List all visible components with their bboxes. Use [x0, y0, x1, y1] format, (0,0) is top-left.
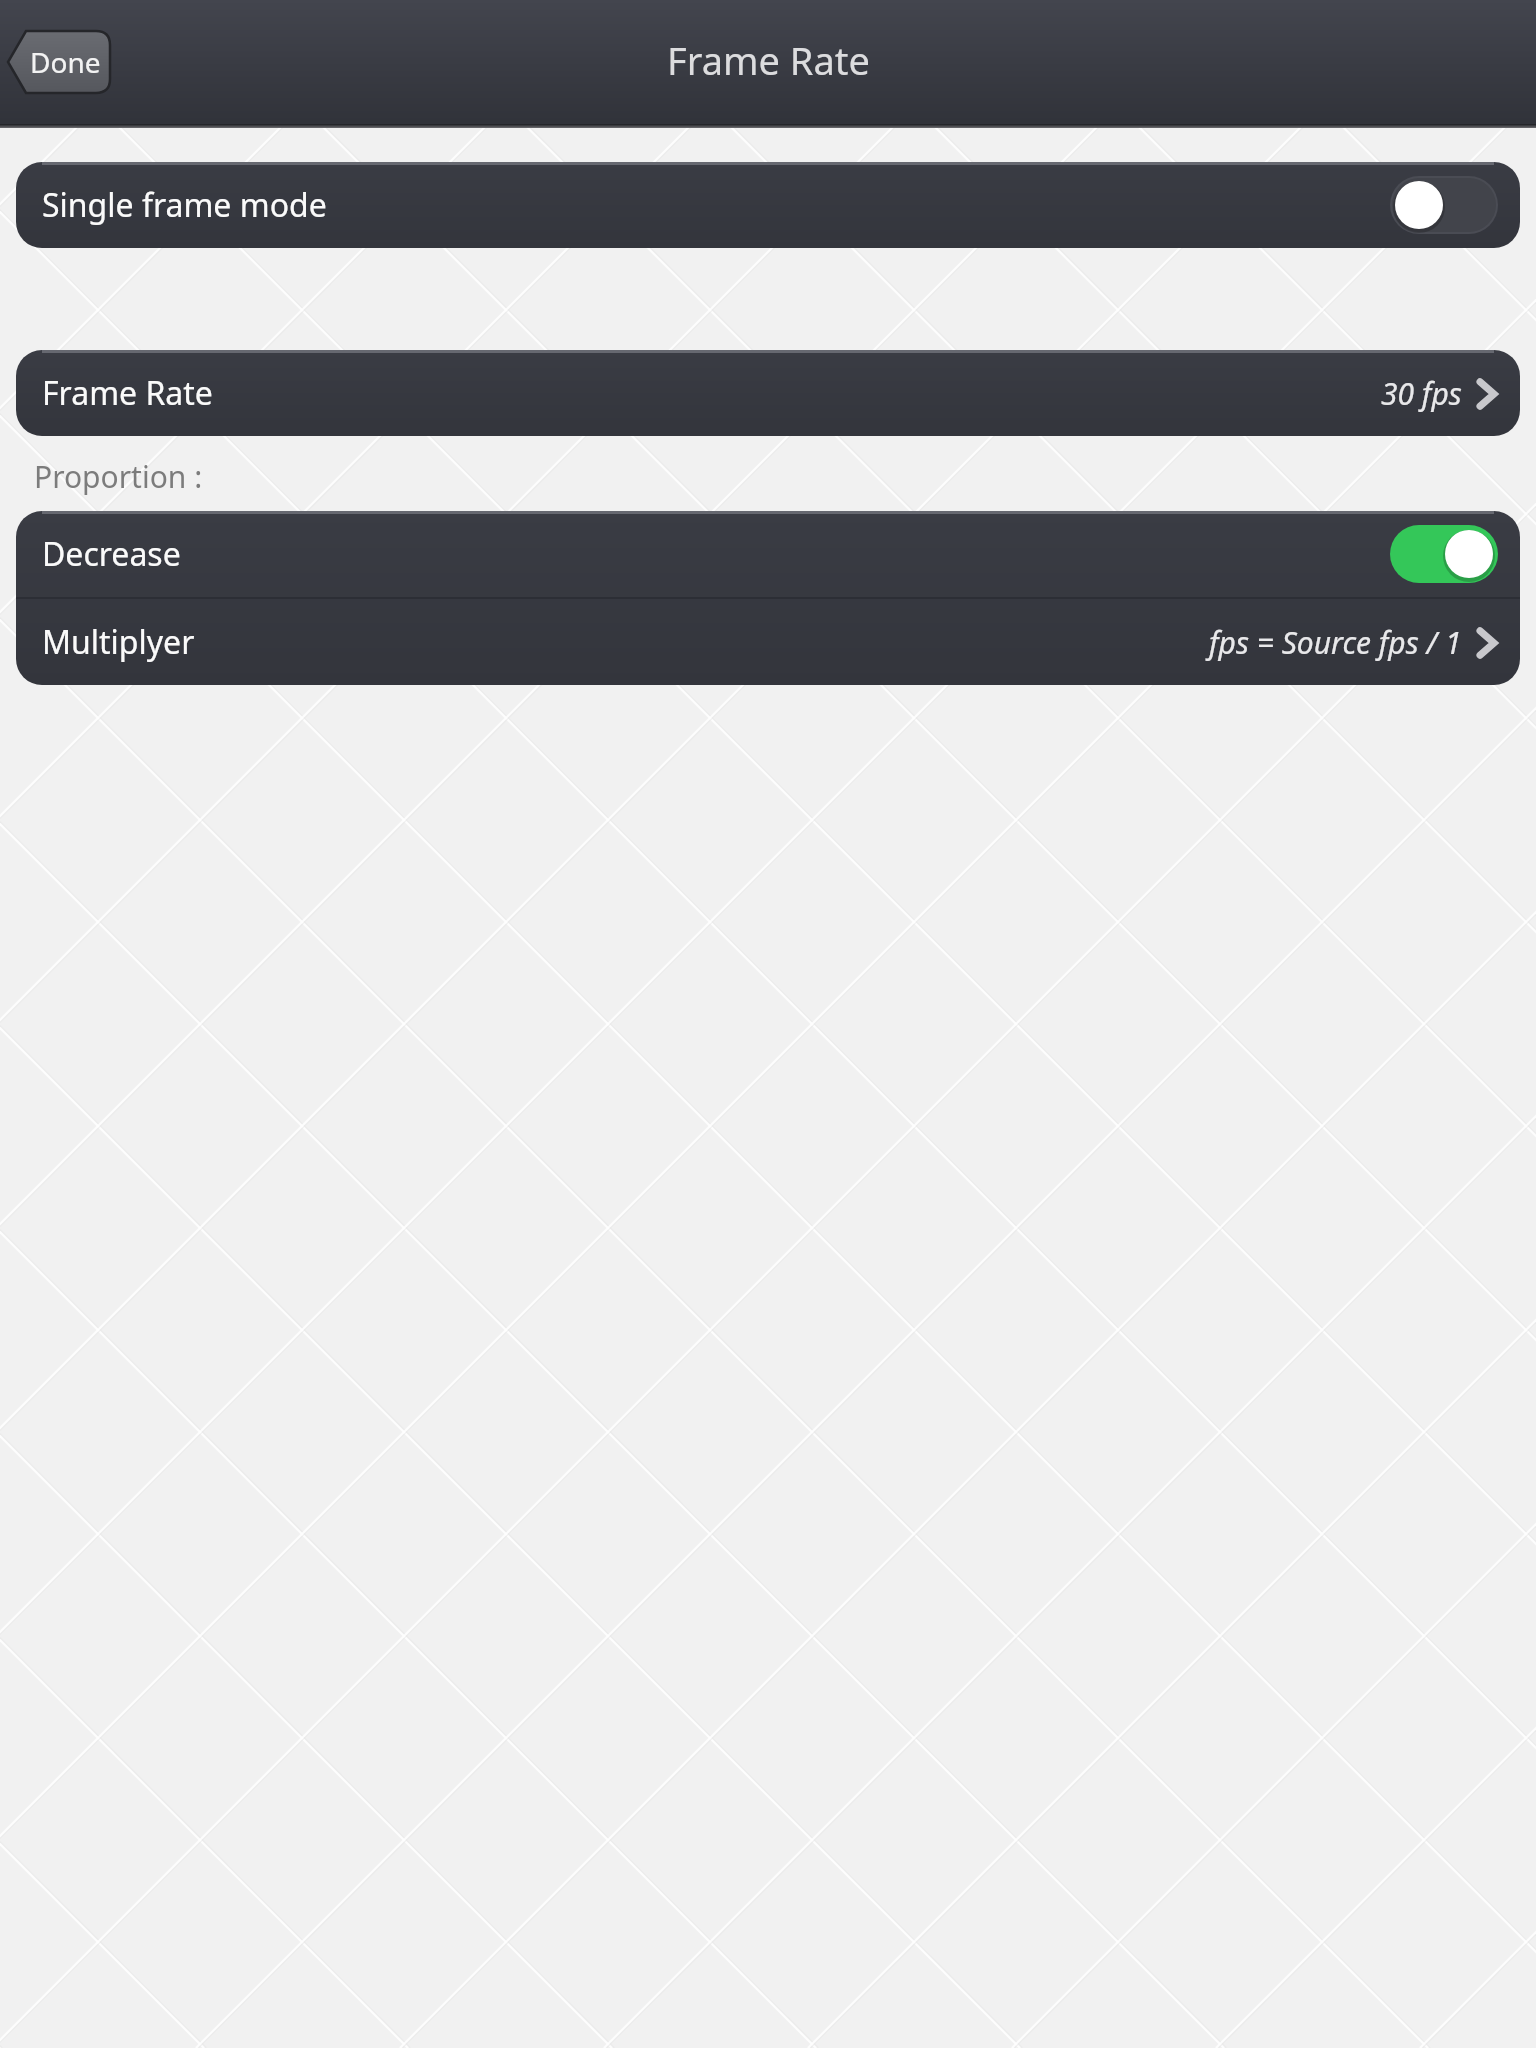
- button[interactable]: Single frame mode: [16, 162, 1520, 248]
- staticText: Multiplyer: [42, 620, 195, 664]
- button[interactable]: Frame Rate: [16, 350, 1520, 436]
- staticText: Decrease: [42, 532, 181, 576]
- button[interactable]: Toggle off: [1390, 176, 1498, 234]
- staticText: Proportion :: [34, 456, 203, 497]
- other: Open: [1476, 626, 1498, 660]
- staticText: Done: [30, 43, 101, 81]
- staticText: Frame Rate: [667, 34, 870, 86]
- staticText: fps = Source fps / 1: [1209, 622, 1462, 663]
- other: Open: [1476, 377, 1498, 411]
- button[interactable]: Decrease: [16, 511, 1520, 597]
- staticText: Frame Rate: [42, 371, 213, 415]
- button[interactable]: Toggle on: [1390, 525, 1498, 583]
- staticText: 30 fps: [1381, 373, 1462, 414]
- button[interactable]: Done: [8, 31, 110, 93]
- staticText: Single frame mode: [42, 183, 327, 227]
- button[interactable]: Multiplyer: [16, 599, 1520, 685]
